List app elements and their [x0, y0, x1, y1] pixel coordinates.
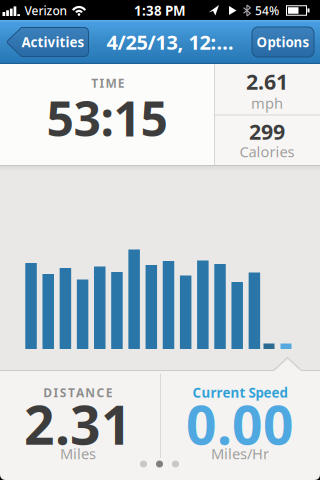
staticText: Current Speed	[192, 384, 287, 401]
staticText: A	[76, 384, 84, 400]
staticText: 299	[249, 117, 285, 146]
staticText: N	[85, 384, 95, 400]
staticText: E	[106, 384, 113, 400]
staticText: Options	[256, 33, 309, 51]
staticText: E	[118, 75, 125, 91]
staticText: Miles	[60, 444, 96, 463]
button[interactable]: Activities	[5, 27, 89, 57]
button[interactable]: Options	[252, 27, 314, 57]
staticText: 0.00	[186, 389, 294, 459]
staticText: 1:38 PM	[134, 2, 186, 19]
staticText: T	[91, 75, 98, 91]
staticText: I	[53, 384, 58, 400]
staticText: M	[105, 75, 116, 91]
staticText: Calories	[239, 142, 294, 161]
staticText: 4/25/13, 12:…	[106, 29, 233, 55]
staticText: mph	[251, 93, 283, 113]
staticText: 54%	[255, 2, 279, 18]
staticText: Verizon	[24, 2, 67, 18]
staticText: Activities	[21, 33, 84, 51]
staticText: T	[68, 384, 75, 400]
staticText: S	[60, 384, 67, 400]
staticText: I	[99, 75, 104, 91]
staticText: 2.61	[246, 67, 288, 96]
staticText: C	[96, 384, 104, 400]
staticText: Miles/Hr	[211, 444, 269, 463]
staticText: 2.31	[24, 389, 132, 459]
staticText: 53:15	[46, 86, 167, 150]
staticText: D	[43, 384, 52, 400]
